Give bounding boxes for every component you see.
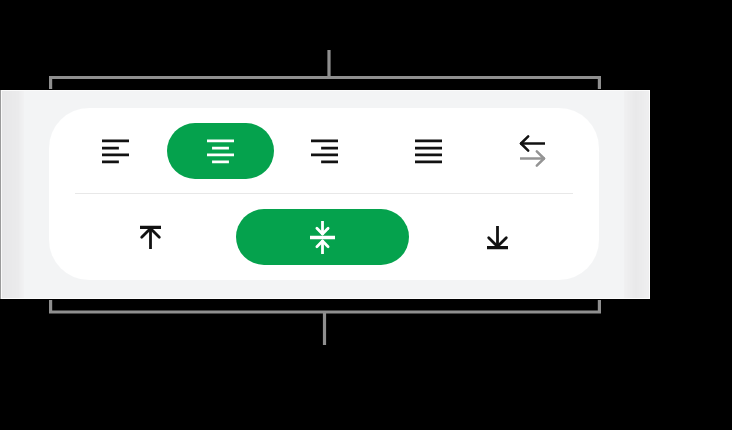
button[interactable]: Align bottom	[469, 209, 525, 265]
button[interactable]: Text direction	[504, 123, 560, 179]
button[interactable]: Align left	[87, 123, 143, 179]
button[interactable]: Align top	[122, 209, 178, 265]
button[interactable]: Justify	[400, 123, 456, 179]
button[interactable]: Selected alignment	[236, 209, 409, 265]
button[interactable]: Selected alignment	[167, 123, 274, 179]
button[interactable]: Align right	[296, 123, 352, 179]
